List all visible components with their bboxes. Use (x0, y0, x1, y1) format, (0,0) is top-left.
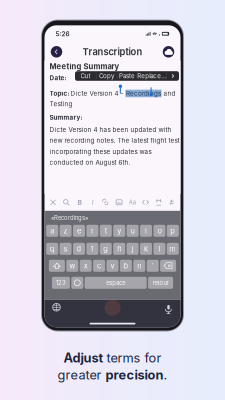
staticText: t (105, 226, 107, 235)
button[interactable]: r (86, 225, 98, 237)
staticText: I (92, 198, 94, 206)
button[interactable]: Format option (86, 197, 99, 207)
button[interactable]: l (153, 243, 165, 255)
button[interactable]: h (113, 243, 125, 255)
button[interactable]: Format option (126, 197, 139, 207)
staticText: Topic: (49, 90, 70, 97)
staticText: Dicte Version 4 has been updated with (49, 126, 171, 133)
button[interactable]: n (133, 260, 145, 272)
staticText: h (117, 244, 121, 253)
staticText: i (145, 226, 147, 235)
staticText: f (91, 244, 94, 253)
staticText: new recording notes. The latest flight t… (49, 137, 179, 144)
button[interactable]: o (153, 225, 165, 237)
button[interactable]: Back (49, 45, 63, 59)
button[interactable]: Shift (49, 260, 65, 272)
button[interactable]: s (60, 243, 72, 255)
staticText: b (123, 261, 128, 270)
staticText: Summary: (49, 114, 82, 121)
staticText: g (103, 244, 108, 253)
staticText: Copy (99, 72, 114, 80)
staticText: o (157, 226, 161, 235)
staticText: Recordings (126, 90, 161, 97)
button[interactable]: Format option (73, 197, 86, 207)
staticText: precision (105, 367, 163, 382)
button[interactable]: Emoji (71, 277, 83, 289)
button[interactable]: Format option (139, 197, 152, 207)
button[interactable]: f (86, 243, 98, 255)
button[interactable]: w (66, 260, 78, 272)
button[interactable]: Format option (112, 197, 126, 207)
button[interactable]: Cut (75, 71, 96, 81)
staticText: d (76, 244, 81, 253)
staticText: Aa (129, 199, 136, 206)
button[interactable]: Format option (99, 197, 112, 207)
staticText: z (64, 226, 68, 235)
staticText: k (144, 244, 148, 253)
staticText: Adjust (63, 350, 106, 365)
button[interactable]: Replace… (137, 71, 166, 81)
staticText: espace (106, 279, 125, 286)
staticText: s (64, 244, 68, 253)
button[interactable]: i (140, 225, 152, 237)
staticText: r (91, 226, 94, 235)
button[interactable]: espace (85, 277, 147, 289)
staticText: j (132, 244, 134, 253)
button[interactable]: q (46, 243, 58, 255)
button[interactable]: Format option (60, 197, 73, 207)
button[interactable]: Format option (152, 197, 165, 207)
staticText: x (84, 261, 88, 270)
button[interactable]: ' (147, 260, 159, 272)
staticText: w (69, 261, 75, 270)
button[interactable]: m (167, 243, 179, 255)
staticText: Meeting Summary (49, 62, 119, 71)
staticText: Paste (119, 72, 135, 80)
button[interactable]: a (46, 225, 58, 237)
button[interactable]: e (73, 225, 85, 237)
button[interactable]: v (106, 260, 118, 272)
staticText: Transcription (82, 46, 142, 57)
staticText: Replace… (137, 72, 166, 80)
staticText: 123 (56, 279, 66, 286)
button[interactable]: b (120, 260, 132, 272)
staticText: v (110, 261, 114, 270)
staticText: greater (57, 367, 105, 382)
button[interactable]: retour (148, 277, 173, 289)
staticText: Cut (81, 72, 91, 80)
button[interactable]: Copy (96, 71, 117, 81)
button[interactable]: u (127, 225, 139, 237)
staticText: Date: (49, 74, 66, 82)
staticText: retour (153, 279, 169, 286)
staticText: p (170, 226, 175, 235)
staticText: Dicte Version 4 - (70, 90, 125, 97)
button[interactable]: Format option (46, 197, 60, 207)
button[interactable]: d (73, 243, 85, 255)
button[interactable]: Upload to cloud (161, 45, 175, 59)
staticText: u (131, 226, 135, 235)
button[interactable]: More (167, 71, 179, 81)
staticText: a (50, 226, 54, 235)
staticText: incorporating these updates was (49, 148, 151, 156)
button[interactable]: x (80, 260, 92, 272)
staticText: q (50, 244, 55, 253)
button[interactable]: 123 (52, 277, 70, 289)
button[interactable]: p (167, 225, 179, 237)
button[interactable]: y (113, 225, 125, 237)
staticText: terms for (106, 350, 161, 365)
button[interactable]: Paste (117, 71, 137, 81)
button[interactable]: k (140, 243, 152, 255)
staticText: ' (152, 261, 154, 270)
button[interactable]: t (100, 225, 112, 237)
button[interactable]: Dictate (162, 301, 174, 313)
staticText: conducted on August 6th. (49, 159, 130, 166)
button[interactable]: Format option (165, 197, 178, 207)
staticText: Testing (49, 100, 72, 108)
staticText: and (161, 90, 175, 97)
button[interactable]: g (100, 243, 112, 255)
staticText: «Recordings» (51, 214, 88, 221)
button[interactable]: Delete (160, 260, 176, 272)
button[interactable]: c (93, 260, 105, 272)
button[interactable]: z (60, 225, 72, 237)
button[interactable]: j (127, 243, 139, 255)
button[interactable]: Change keyboard (50, 301, 62, 313)
